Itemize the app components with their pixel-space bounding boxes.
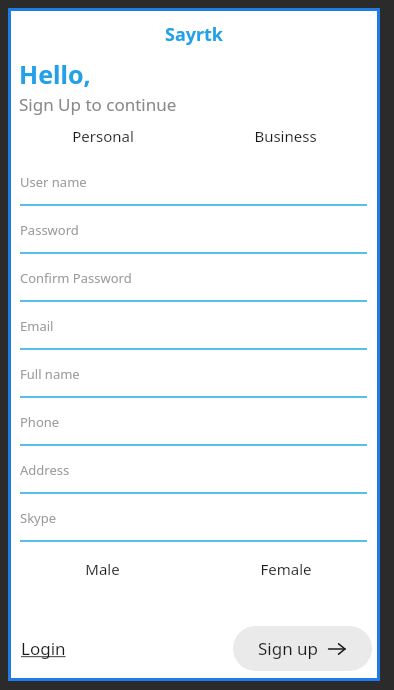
staticText: Phone bbox=[20, 413, 60, 431]
staticText: Email bbox=[20, 317, 54, 335]
button[interactable]: Phone bbox=[20, 400, 367, 448]
button[interactable]: Email bbox=[20, 304, 367, 352]
button[interactable]: Business bbox=[194, 124, 377, 148]
button[interactable]: Personal bbox=[11, 124, 194, 148]
staticText: Personal bbox=[72, 126, 134, 146]
button[interactable]: Login bbox=[21, 637, 70, 660]
staticText: Password bbox=[20, 221, 79, 239]
staticText: Login bbox=[21, 637, 70, 660]
button[interactable]: Female bbox=[194, 557, 377, 581]
button[interactable]: Confirm Password bbox=[20, 256, 367, 304]
staticText: Sayrtk bbox=[165, 22, 223, 47]
staticText: Hello, bbox=[19, 57, 91, 91]
staticText: Business bbox=[254, 126, 317, 146]
staticText: Female bbox=[260, 559, 312, 579]
staticText: User name bbox=[20, 173, 87, 191]
staticText: Confirm Password bbox=[20, 269, 132, 287]
button[interactable]: Password bbox=[20, 208, 367, 256]
staticText: Male bbox=[85, 559, 120, 579]
button[interactable]: Address bbox=[20, 448, 367, 496]
staticText: Sign up bbox=[258, 637, 319, 660]
button[interactable]: Male bbox=[11, 557, 194, 581]
staticText: Address bbox=[20, 461, 70, 479]
button[interactable]: User name bbox=[20, 160, 367, 208]
button[interactable]: Sign up bbox=[233, 626, 372, 671]
button[interactable]: Skype bbox=[20, 496, 367, 544]
staticText: Full name bbox=[20, 365, 80, 383]
staticText: Skype bbox=[20, 509, 57, 527]
button[interactable]: Full name bbox=[20, 352, 367, 400]
staticText: Sign Up to continue bbox=[19, 93, 177, 116]
